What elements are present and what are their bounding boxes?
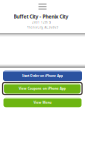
button[interactable]: View Menu <box>3 98 81 107</box>
staticText: 2401 12th St <box>32 21 51 24</box>
staticText: View Coupons on iPhone App <box>19 86 66 91</box>
staticText: Phenix City, AL 36869 <box>26 26 58 29</box>
staticText: Buffet City - Phenix City <box>13 13 68 20</box>
button[interactable]: Start Order on iPhone App <box>3 70 82 81</box>
staticText: Start Order on iPhone App <box>22 74 63 78</box>
button[interactable]: View Coupons on iPhone App <box>4 83 80 93</box>
staticText: View Menu <box>33 100 51 105</box>
button[interactable]: Menu <box>34 1 50 12</box>
